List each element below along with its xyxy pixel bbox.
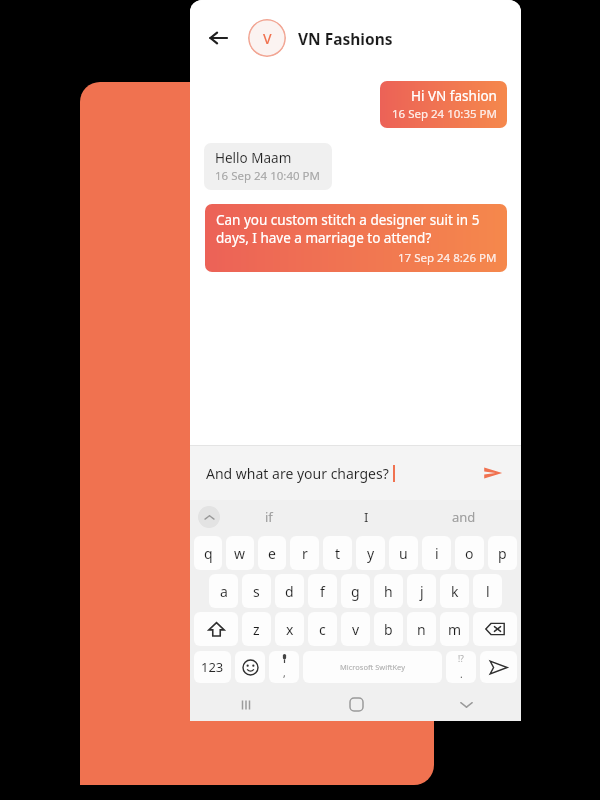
staticText: y <box>367 544 375 563</box>
button[interactable]: j <box>407 574 436 608</box>
button[interactable]: And what are your charges? <box>190 446 521 500</box>
button[interactable]: n <box>407 612 436 646</box>
button[interactable]: and <box>415 500 513 534</box>
staticText: b <box>384 620 393 639</box>
button[interactable]: V <box>248 19 393 57</box>
button[interactable]: r <box>290 536 319 570</box>
button[interactable]: o <box>455 536 484 570</box>
button[interactable]: a <box>209 574 238 608</box>
button[interactable]: x <box>275 612 304 646</box>
button[interactable]: v <box>341 612 370 646</box>
staticText: s <box>253 582 260 601</box>
staticText: VN Fashions <box>298 28 393 49</box>
button[interactable]: d <box>275 574 304 608</box>
staticText: Hello Maam <box>215 149 292 167</box>
button[interactable]: Hide keyboard <box>411 688 521 721</box>
button[interactable]: Backspace <box>473 612 517 646</box>
staticText: e <box>268 544 276 563</box>
button[interactable]: Shift <box>194 612 238 646</box>
staticText: if <box>265 508 273 526</box>
staticText: And what are your charges? <box>206 464 389 483</box>
staticText: 16 Sep 24 10:35 PM <box>392 106 497 122</box>
staticText: 123 <box>201 658 224 676</box>
button[interactable]: Emoji <box>235 651 265 683</box>
button[interactable]: Voice input <box>269 651 299 683</box>
button[interactable]: Numbers <box>194 651 231 683</box>
button[interactable]: if <box>220 500 317 534</box>
button[interactable]: h <box>374 574 403 608</box>
button[interactable]: I <box>317 500 415 534</box>
button[interactable]: Back <box>198 18 238 58</box>
button[interactable]: p <box>488 536 517 570</box>
button[interactable]: w <box>226 536 254 570</box>
button[interactable]: Can you custom stitch a designer suit in… <box>205 204 507 272</box>
staticText: t <box>335 544 341 563</box>
button[interactable]: Space <box>303 651 442 683</box>
staticText: p <box>498 544 507 563</box>
staticText: u <box>399 544 408 563</box>
staticText: and <box>452 508 476 526</box>
staticText: Microsoft SwiftKey <box>340 662 405 672</box>
staticText: h <box>384 582 393 601</box>
staticText: w <box>234 544 246 563</box>
button[interactable]: l <box>473 574 502 608</box>
button[interactable]: b <box>374 612 403 646</box>
staticText: 17 Sep 24 8:26 PM <box>398 250 497 266</box>
staticText: 16 Sep 24 10:40 PM <box>215 168 320 184</box>
staticText: j <box>420 582 424 601</box>
staticText: z <box>253 620 260 639</box>
staticText: V <box>263 29 272 48</box>
staticText: f <box>320 582 325 601</box>
button[interactable]: Home <box>301 688 411 721</box>
staticText: r <box>302 544 308 563</box>
button[interactable]: k <box>440 574 469 608</box>
button[interactable]: Hi VN fashion <box>380 81 507 128</box>
button[interactable]: y <box>356 536 385 570</box>
button[interactable]: Send <box>471 451 515 495</box>
staticText: x <box>286 620 294 639</box>
button[interactable]: t <box>323 536 352 570</box>
staticText: q <box>204 544 213 563</box>
button[interactable]: g <box>341 574 370 608</box>
staticText: v <box>352 620 360 639</box>
button[interactable]: c <box>308 612 337 646</box>
staticText: , <box>283 666 286 680</box>
staticText: m <box>448 620 462 639</box>
staticText: k <box>451 582 459 601</box>
staticText: I <box>364 508 369 526</box>
staticText: Hi VN fashion <box>411 87 497 105</box>
button[interactable]: u <box>389 536 418 570</box>
staticText: a <box>220 582 228 601</box>
button[interactable]: Period <box>446 651 476 683</box>
button[interactable]: e <box>258 536 286 570</box>
button[interactable]: Send message <box>480 651 517 683</box>
button[interactable]: z <box>242 612 271 646</box>
button[interactable]: Expand suggestions <box>198 506 220 528</box>
staticText: Can you custom stitch a designer suit in… <box>216 211 497 247</box>
staticText: !? <box>458 653 464 664</box>
button[interactable]: m <box>440 612 469 646</box>
staticText: l <box>486 582 490 601</box>
staticText: c <box>319 620 326 639</box>
staticText: i <box>435 544 439 563</box>
button[interactable]: i <box>422 536 451 570</box>
button[interactable]: s <box>242 574 271 608</box>
staticText: d <box>285 582 294 601</box>
button[interactable]: f <box>308 574 337 608</box>
staticText: o <box>465 544 474 563</box>
staticText: g <box>351 582 360 601</box>
button[interactable]: Hello Maam <box>204 143 332 190</box>
button[interactable]: q <box>194 536 222 570</box>
button[interactable]: Recent apps <box>190 688 301 721</box>
staticText: . <box>460 667 463 681</box>
staticText: n <box>417 620 426 639</box>
